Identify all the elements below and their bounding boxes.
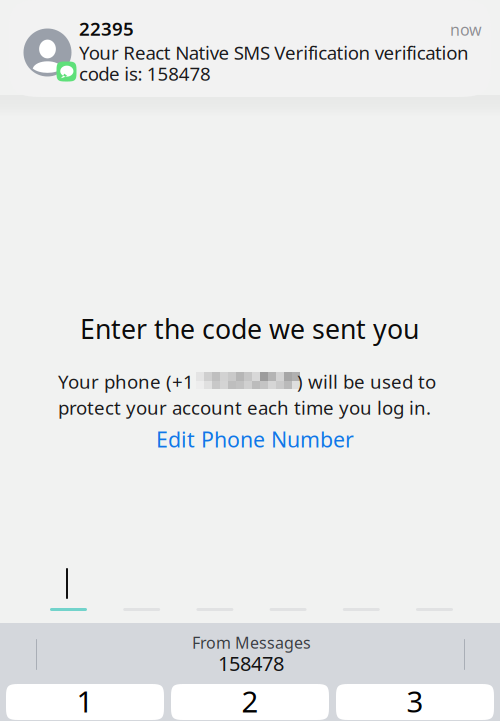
- staticText: protect your account each time you log i…: [58, 395, 431, 420]
- staticText: 2: [241, 681, 258, 720]
- staticText: From Messages: [192, 632, 311, 653]
- button[interactable]: Edit Phone Number: [156, 425, 354, 453]
- staticText: Edit Phone Number: [156, 425, 354, 453]
- staticText: 22395: [79, 16, 134, 41]
- button[interactable]: 2: [171, 684, 329, 720]
- button[interactable]: 1: [6, 684, 164, 720]
- staticText: 158478: [218, 650, 284, 677]
- staticText: Enter the code we sent you: [80, 311, 419, 346]
- staticText: 1: [76, 681, 93, 720]
- staticText: Your phone (+1: [58, 369, 194, 394]
- staticText: code is: 158478: [79, 61, 211, 86]
- staticText: ) will be used to: [297, 369, 436, 394]
- staticText: Your React Native SMS Verification verif…: [79, 40, 469, 65]
- staticText: now: [450, 19, 482, 40]
- staticText: 3: [406, 681, 423, 720]
- button[interactable]: 3: [336, 684, 494, 720]
